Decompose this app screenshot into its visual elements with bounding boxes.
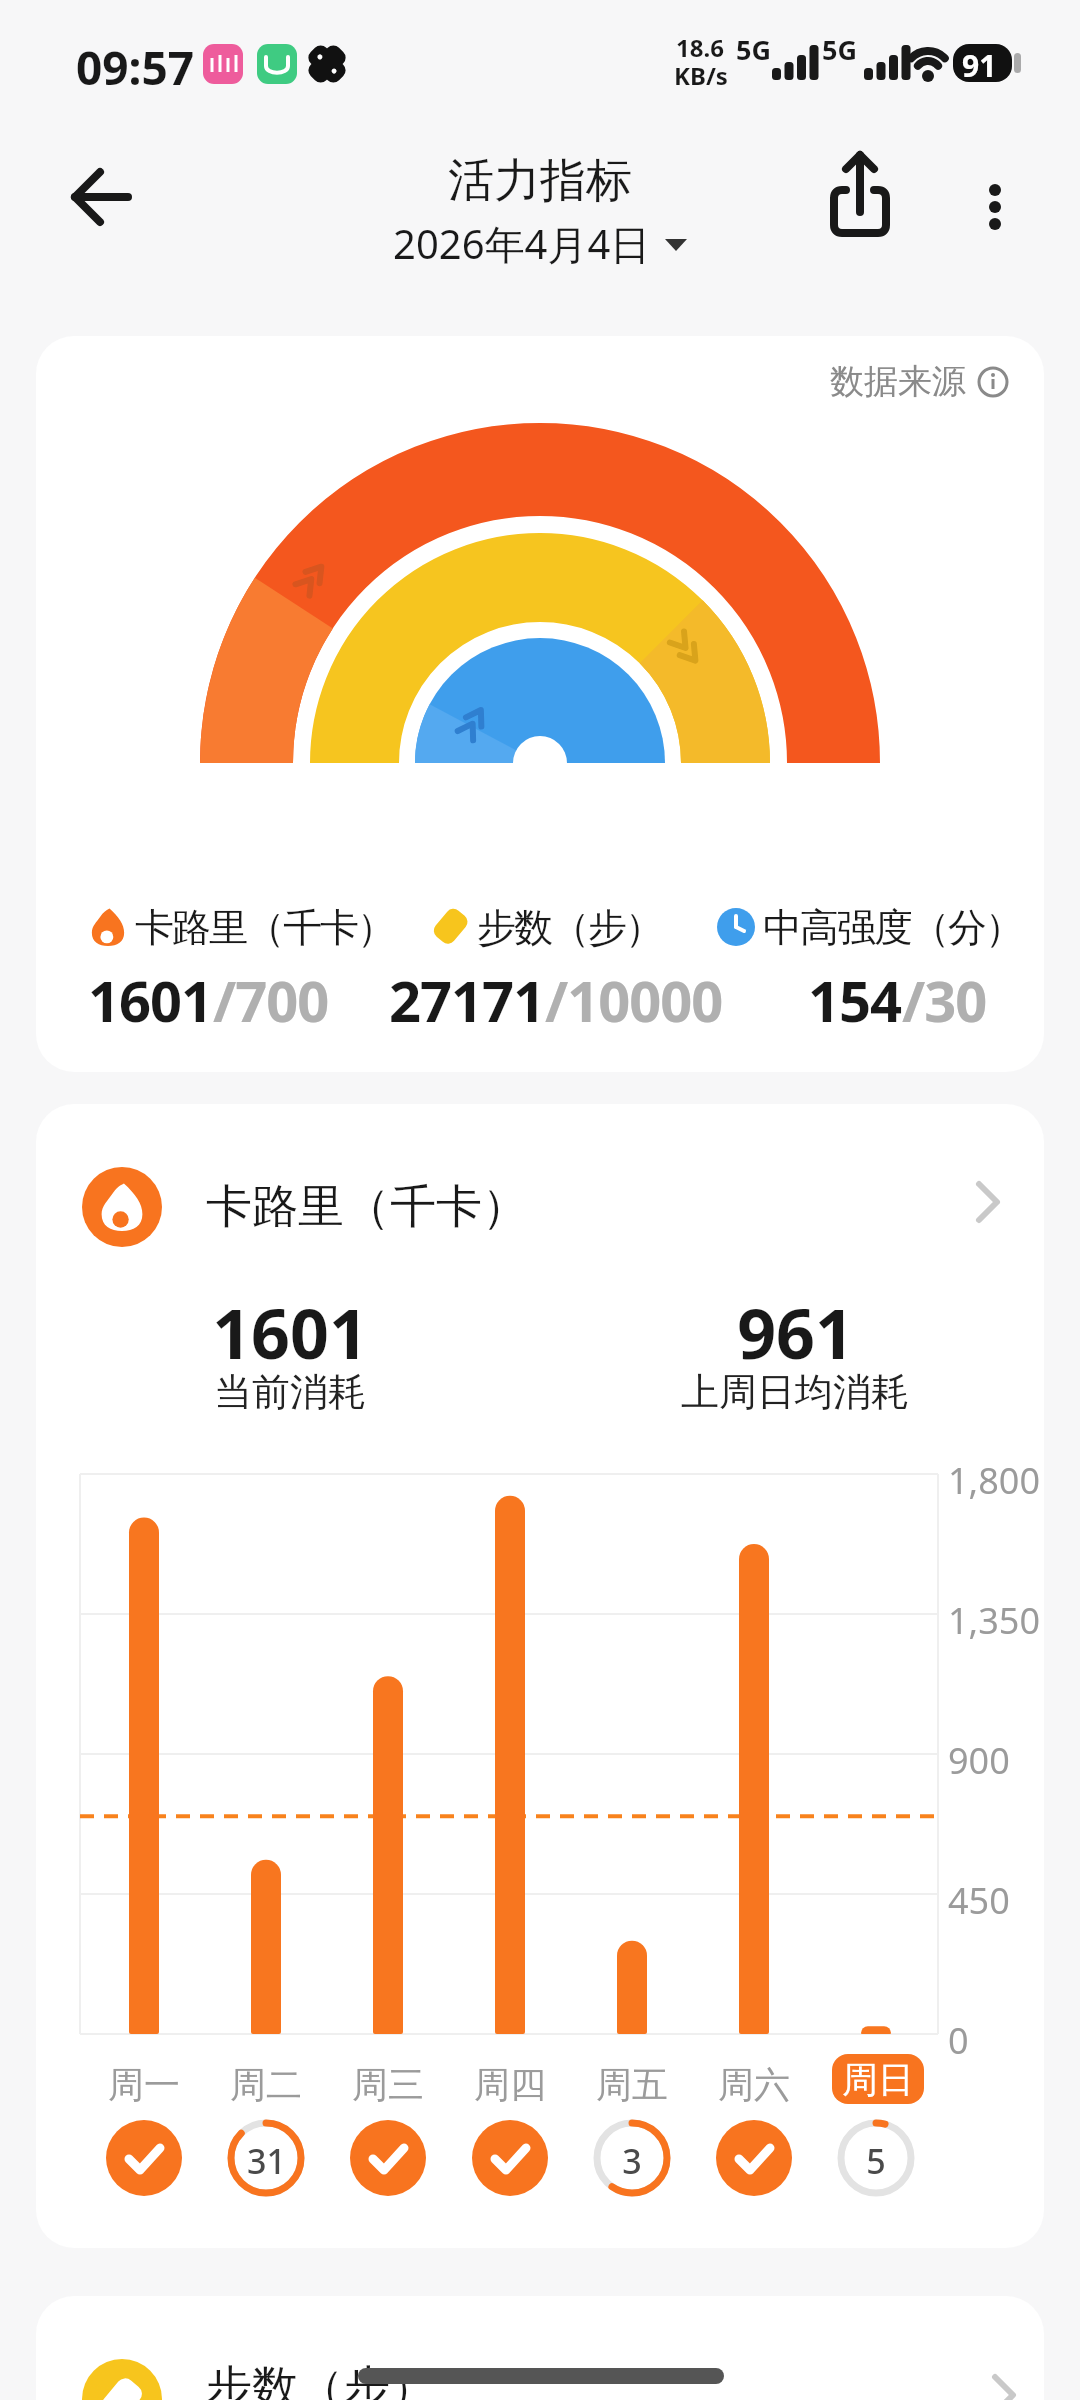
button[interactable]: 2026年4月4日 — [393, 216, 687, 271]
button[interactable]: 卡路里（千卡） — [82, 1167, 1044, 1247]
staticText: 09:57 — [76, 36, 195, 99]
staticText: 步数（步） — [478, 903, 663, 952]
staticText: 周三 — [352, 2062, 424, 2107]
staticText: 步数（步） — [206, 2359, 436, 2400]
staticText: 卡路里（千卡） — [136, 903, 395, 952]
staticText: 周六 — [718, 2062, 790, 2107]
staticText: 中高强度（分） — [764, 903, 1023, 952]
staticText: 900 — [948, 1736, 1010, 1785]
staticText: 周四 — [474, 2062, 546, 2107]
staticText: 91 — [962, 45, 997, 86]
staticText: 周二 — [230, 2062, 302, 2107]
button[interactable] — [820, 160, 910, 250]
staticText: 18.6 — [676, 31, 724, 64]
button[interactable] — [960, 160, 1040, 250]
staticText: 961 — [737, 1286, 854, 1379]
staticText: 当前消耗 — [214, 1368, 366, 1416]
button[interactable]: 步数（步） — [36, 2296, 1044, 2400]
staticText: 周一 — [108, 2062, 180, 2107]
staticText: 上周日均消耗 — [681, 1368, 909, 1416]
button[interactable] — [50, 160, 140, 240]
staticText: /10000 — [545, 962, 723, 1038]
staticText: 5G — [736, 31, 771, 68]
staticText: 数据来源 — [830, 360, 966, 403]
staticText: KB/s — [674, 59, 728, 92]
staticText: 0 — [948, 2016, 969, 2065]
staticText: 1,350 — [948, 1596, 1041, 1645]
staticText: 31 — [247, 2138, 286, 2184]
staticText: 154 — [808, 962, 902, 1038]
staticText: /30 — [902, 962, 987, 1038]
staticText: 活力指标 — [448, 152, 632, 210]
staticText: 1,800 — [948, 1456, 1041, 1505]
staticText: 5G — [822, 31, 857, 68]
staticText: 450 — [948, 1876, 1010, 1925]
staticText: /700 — [213, 962, 329, 1038]
staticText: 周五 — [596, 2062, 668, 2107]
staticText: 3 — [622, 2138, 642, 2184]
staticText: 2026年4月4日 — [393, 216, 651, 271]
staticText: 卡路里（千卡） — [206, 1178, 528, 1236]
staticText: 1601 — [212, 1286, 368, 1379]
button[interactable]: 周日 — [832, 2054, 924, 2104]
staticText: 5 — [866, 2138, 886, 2184]
button[interactable]: 中高强度（分） — [716, 902, 1023, 952]
staticText: 周日 — [842, 2057, 914, 2102]
staticText: 27171 — [389, 962, 545, 1038]
button[interactable]: 数据来源 — [830, 360, 1010, 403]
button[interactable]: 卡路里（千卡） — [88, 902, 395, 952]
button[interactable]: 步数（步） — [430, 902, 663, 952]
staticText: 1601 — [88, 962, 213, 1038]
